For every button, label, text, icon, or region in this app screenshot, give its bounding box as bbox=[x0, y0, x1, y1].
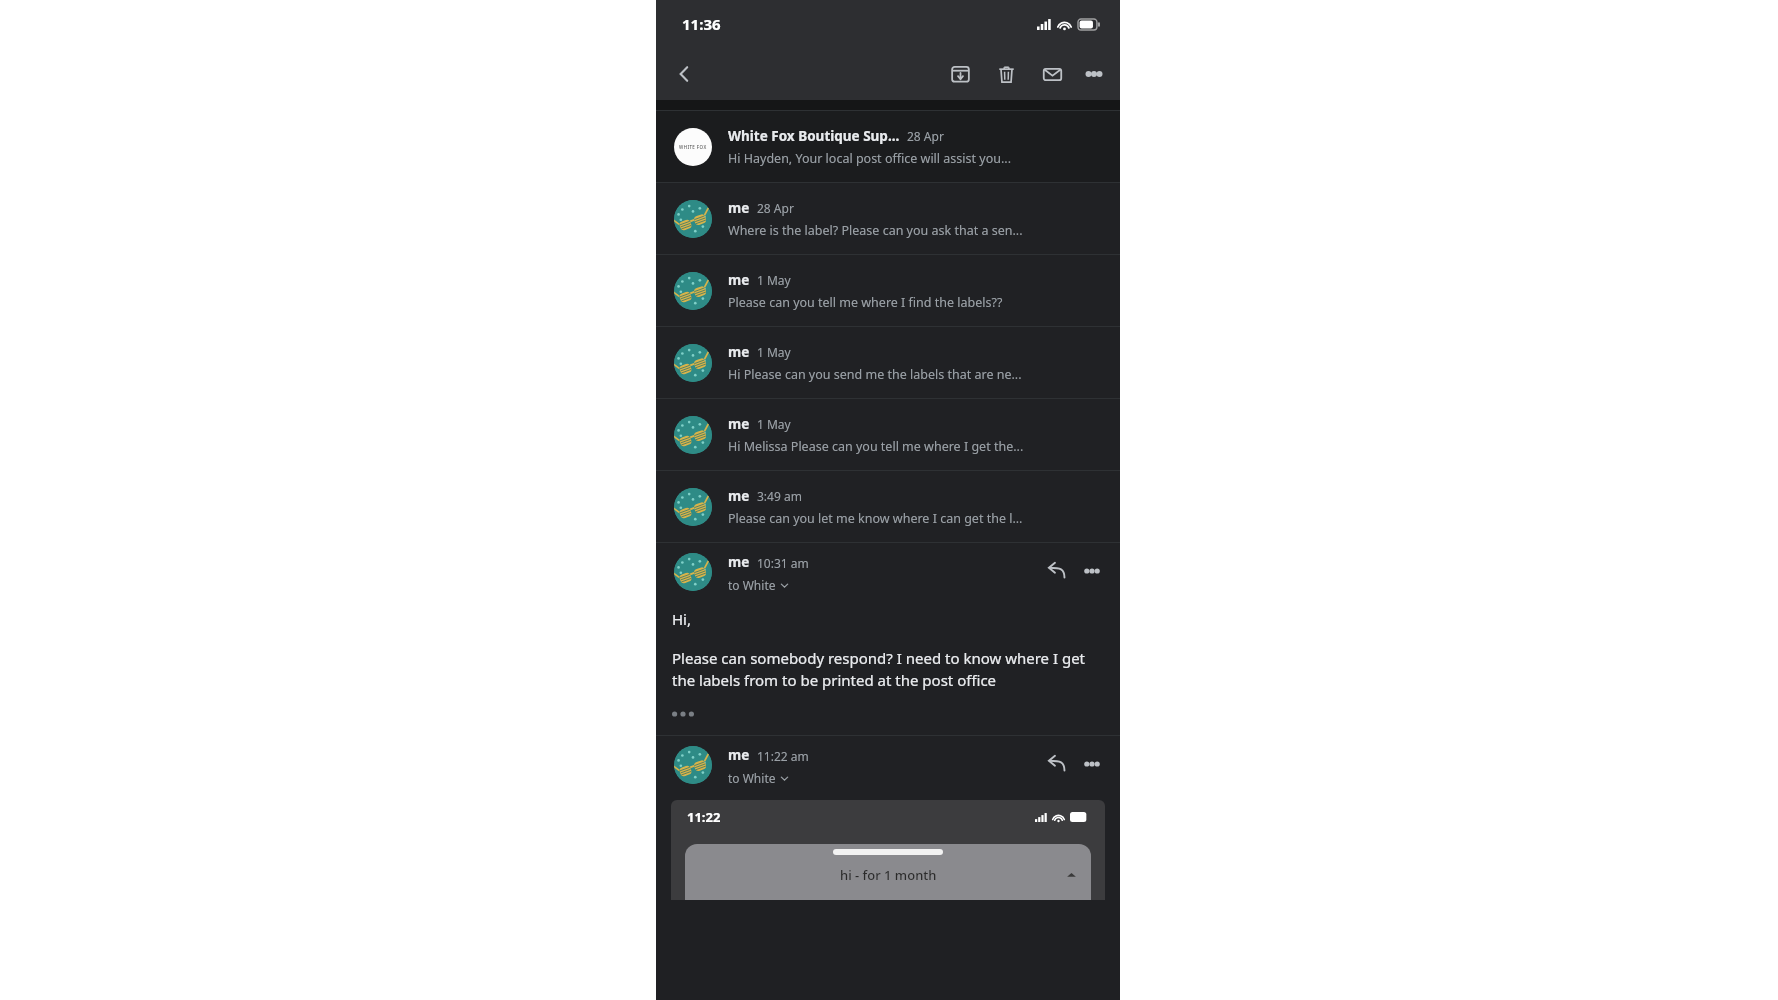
staticText: 28 Apr bbox=[757, 200, 794, 216]
staticText: to White bbox=[728, 577, 776, 593]
staticText: 1 May bbox=[757, 416, 791, 432]
button[interactable]: Archive bbox=[940, 54, 980, 94]
staticText: Hi, bbox=[672, 609, 692, 629]
button[interactable]: Show trimmed content bbox=[668, 703, 702, 725]
staticText: me bbox=[728, 271, 750, 289]
button[interactable]: More options bbox=[1074, 746, 1110, 782]
staticText: Hi Hayden, Your local post office will a… bbox=[728, 150, 1106, 167]
button[interactable]: Back bbox=[664, 54, 704, 94]
button[interactable]: Delete bbox=[986, 54, 1026, 94]
button[interactable]: WHITE FOX bbox=[656, 111, 1120, 182]
staticText: White Fox Boutique Sup... bbox=[728, 127, 900, 145]
button[interactable]: Reply bbox=[1038, 746, 1074, 782]
staticText: me bbox=[728, 343, 750, 361]
button[interactable]: to White bbox=[728, 577, 789, 593]
button[interactable]: me bbox=[656, 255, 1120, 326]
staticText: Please can you let me know where I can g… bbox=[728, 510, 1106, 527]
button[interactable]: me bbox=[656, 183, 1120, 254]
staticText: me bbox=[728, 553, 750, 571]
button[interactable]: Reply bbox=[1038, 553, 1074, 589]
staticText: to White bbox=[728, 770, 776, 786]
button[interactable]: me bbox=[656, 327, 1120, 398]
staticText: me bbox=[728, 415, 750, 433]
button[interactable]: to White bbox=[728, 770, 789, 786]
staticText: me bbox=[728, 746, 750, 764]
button[interactable]: me bbox=[656, 543, 1120, 735]
staticText: 28 Apr bbox=[907, 128, 944, 144]
staticText: Where is the label? Please can you ask t… bbox=[728, 222, 1106, 239]
staticText: WHITE FOX bbox=[679, 144, 707, 150]
staticText: me bbox=[728, 487, 750, 505]
button[interactable]: me bbox=[656, 399, 1120, 470]
staticText: 1 May bbox=[757, 344, 791, 360]
staticText: 11:22 am bbox=[757, 748, 809, 764]
staticText: 10:31 am bbox=[757, 555, 809, 571]
button[interactable]: More options bbox=[1074, 54, 1114, 94]
button[interactable]: Mark unread bbox=[1032, 54, 1072, 94]
button[interactable]: More options bbox=[1074, 553, 1110, 589]
staticText: Please can you tell me where I find the … bbox=[728, 294, 1106, 311]
staticText: Hi Please can you send me the labels tha… bbox=[728, 366, 1106, 383]
staticText: 11:36 bbox=[682, 14, 721, 34]
staticText: Hi Melissa Please can you tell me where … bbox=[728, 438, 1106, 455]
staticText: hi - for 1 month bbox=[840, 866, 937, 884]
staticText: Please can somebody respond? I need to k… bbox=[672, 648, 1104, 690]
staticText: 3:49 am bbox=[757, 488, 802, 504]
staticText: 11:22 bbox=[687, 808, 721, 826]
button[interactable]: me bbox=[656, 471, 1120, 542]
staticText: 1 May bbox=[757, 272, 791, 288]
staticText: me bbox=[728, 199, 750, 217]
button[interactable]: me bbox=[656, 736, 1120, 900]
